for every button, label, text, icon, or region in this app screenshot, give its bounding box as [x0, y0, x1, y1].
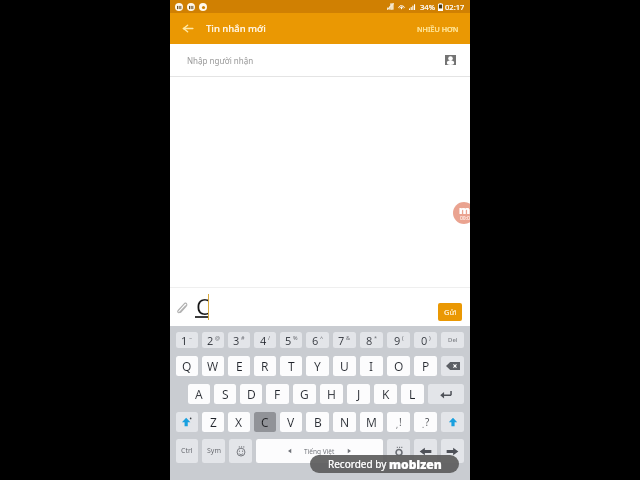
- button[interactable]: C: [254, 412, 276, 432]
- button[interactable]: N: [333, 412, 356, 432]
- staticText: 02:17: [445, 2, 465, 12]
- button[interactable]: 9: [387, 332, 410, 348]
- button[interactable]: Right: [441, 439, 464, 463]
- button[interactable]: NHIỀU HƠN: [407, 13, 470, 44]
- button[interactable]: 8: [360, 332, 383, 348]
- button[interactable]: 2: [202, 332, 224, 348]
- staticText: Tin nhắn mới: [206, 22, 266, 35]
- button[interactable]: 0: [414, 332, 437, 348]
- button[interactable]: Shift: [441, 412, 464, 432]
- button[interactable]: Y: [306, 356, 329, 376]
- button[interactable]: G: [293, 384, 316, 404]
- button[interactable]: T: [280, 356, 302, 376]
- staticText: ~: [189, 334, 193, 341]
- button[interactable]: Emoji: [229, 439, 252, 463]
- button[interactable]: K: [374, 384, 397, 404]
- button[interactable]: 1: [176, 332, 198, 348]
- other: Enter: [440, 390, 452, 399]
- button[interactable]: H: [320, 384, 343, 404]
- staticText: ?: [425, 415, 430, 429]
- staticText: I: [369, 358, 374, 374]
- other: Left: [419, 447, 432, 456]
- other: Right: [446, 447, 459, 456]
- button[interactable]: 6: [306, 332, 329, 348]
- staticText: B: [314, 414, 322, 430]
- staticText: Tiếng Việt: [304, 447, 335, 456]
- button[interactable]: Choose contact: [442, 52, 458, 68]
- button[interactable]: E: [228, 356, 250, 376]
- button[interactable]: R: [254, 356, 276, 376]
- other: Emoji: [234, 444, 248, 458]
- button[interactable]: Q: [176, 356, 198, 376]
- staticText: Del: [448, 336, 458, 344]
- staticText: A: [195, 386, 203, 402]
- staticText: 2: [207, 333, 214, 348]
- other: Settings: [392, 444, 406, 458]
- button[interactable]: Ctrl: [176, 439, 198, 463]
- button[interactable]: .: [414, 412, 437, 432]
- button[interactable]: 4: [254, 332, 276, 348]
- staticText: T: [288, 358, 295, 374]
- staticText: W: [207, 358, 219, 374]
- button[interactable]: Mobizen recorder: [453, 202, 470, 224]
- button[interactable]: Sym: [202, 439, 225, 463]
- button[interactable]: M: [360, 412, 383, 432]
- staticText: J: [357, 386, 361, 402]
- button[interactable]: X: [228, 412, 250, 432]
- button[interactable]: 3: [228, 332, 250, 348]
- button[interactable]: Settings: [387, 439, 410, 463]
- staticText: @: [215, 334, 220, 341]
- button[interactable]: C: [193, 287, 217, 326]
- button[interactable]: Left: [414, 439, 437, 463]
- staticText: 5: [285, 333, 292, 348]
- staticText: Y: [314, 358, 321, 374]
- staticText: F: [274, 386, 281, 402]
- staticText: mobizen: [389, 456, 442, 472]
- button[interactable]: Z: [202, 412, 224, 432]
- button[interactable]: S: [214, 384, 236, 404]
- button[interactable]: B: [306, 412, 329, 432]
- button[interactable]: A: [188, 384, 210, 404]
- staticText: 9: [394, 333, 401, 348]
- button[interactable]: Backspace: [441, 356, 464, 376]
- button[interactable]: V: [280, 412, 302, 432]
- staticText: %: [293, 334, 298, 341]
- staticText: L: [409, 386, 416, 402]
- button[interactable]: U: [333, 356, 356, 376]
- staticText: S: [222, 386, 229, 402]
- staticText: ,: [396, 419, 399, 430]
- staticText: N: [340, 414, 350, 430]
- button[interactable]: F: [266, 384, 289, 404]
- staticText: P: [422, 358, 430, 374]
- button[interactable]: W: [202, 356, 224, 376]
- button[interactable]: Attach: [174, 300, 190, 316]
- staticText: !: [399, 415, 402, 429]
- button[interactable]: D: [240, 384, 262, 404]
- staticText: 3: [233, 333, 240, 348]
- other: Space: [256, 439, 383, 463]
- staticText: 0: [421, 333, 428, 348]
- staticText: C: [261, 414, 269, 430]
- button[interactable]: ,: [387, 412, 410, 432]
- other: Backspace: [446, 362, 460, 370]
- button[interactable]: J: [347, 384, 370, 404]
- button[interactable]: Back: [179, 13, 197, 44]
- staticText: NHIỀU HƠN: [417, 24, 459, 34]
- button[interactable]: O: [387, 356, 410, 376]
- button[interactable]: 7: [333, 332, 356, 348]
- button[interactable]: Space: [256, 439, 383, 463]
- staticText: Recorded by: [328, 457, 389, 471]
- button[interactable]: Enter: [428, 384, 464, 404]
- button[interactable]: Gửi: [438, 303, 462, 321]
- button[interactable]: 5: [280, 332, 302, 348]
- button[interactable]: Del: [441, 332, 464, 348]
- button[interactable]: P: [414, 356, 437, 376]
- button[interactable]: I: [360, 356, 383, 376]
- staticText: Sym: [207, 446, 221, 456]
- staticText: m: [459, 202, 470, 217]
- button[interactable]: Shift: [176, 412, 198, 432]
- staticText: 4: [260, 333, 267, 348]
- staticText: 34%: [420, 2, 435, 12]
- button[interactable]: L: [401, 384, 424, 404]
- staticText: 1: [181, 333, 188, 348]
